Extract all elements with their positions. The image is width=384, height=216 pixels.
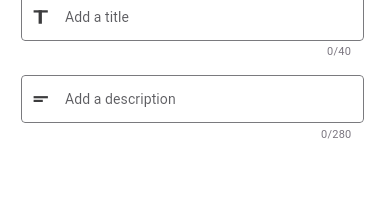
- button[interactable]: Title: [21, 0, 364, 41]
- other: Description: [33, 92, 48, 107]
- staticText: 0/40: [327, 45, 352, 58]
- other: Title: [33, 9, 49, 25]
- staticText: 0/280: [321, 128, 352, 141]
- staticText: Add a description: [65, 91, 176, 107]
- button[interactable]: Description: [21, 75, 364, 123]
- staticText: Add a title: [65, 9, 129, 25]
